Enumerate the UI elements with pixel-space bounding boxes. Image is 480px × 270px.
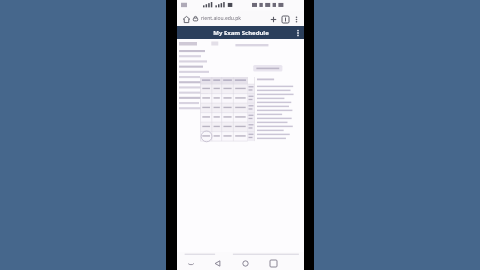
button[interactable]: New tab [267,13,279,25]
button[interactable]: Back [204,256,231,270]
button[interactable]: More options [291,14,301,24]
button[interactable]: rient.aiou.edu.pk [192,13,267,24]
staticText: rient.aiou.edu.pk [201,15,242,22]
button[interactable]: Home [180,13,192,25]
button[interactable]: Recent apps [259,256,287,270]
button[interactable]: Home [231,256,259,270]
button[interactable]: Page menu [292,27,304,39]
button[interactable]: Keyboard [177,256,204,270]
staticText: My Exam Schedule [213,29,269,37]
button[interactable]: Tabs [279,13,291,25]
